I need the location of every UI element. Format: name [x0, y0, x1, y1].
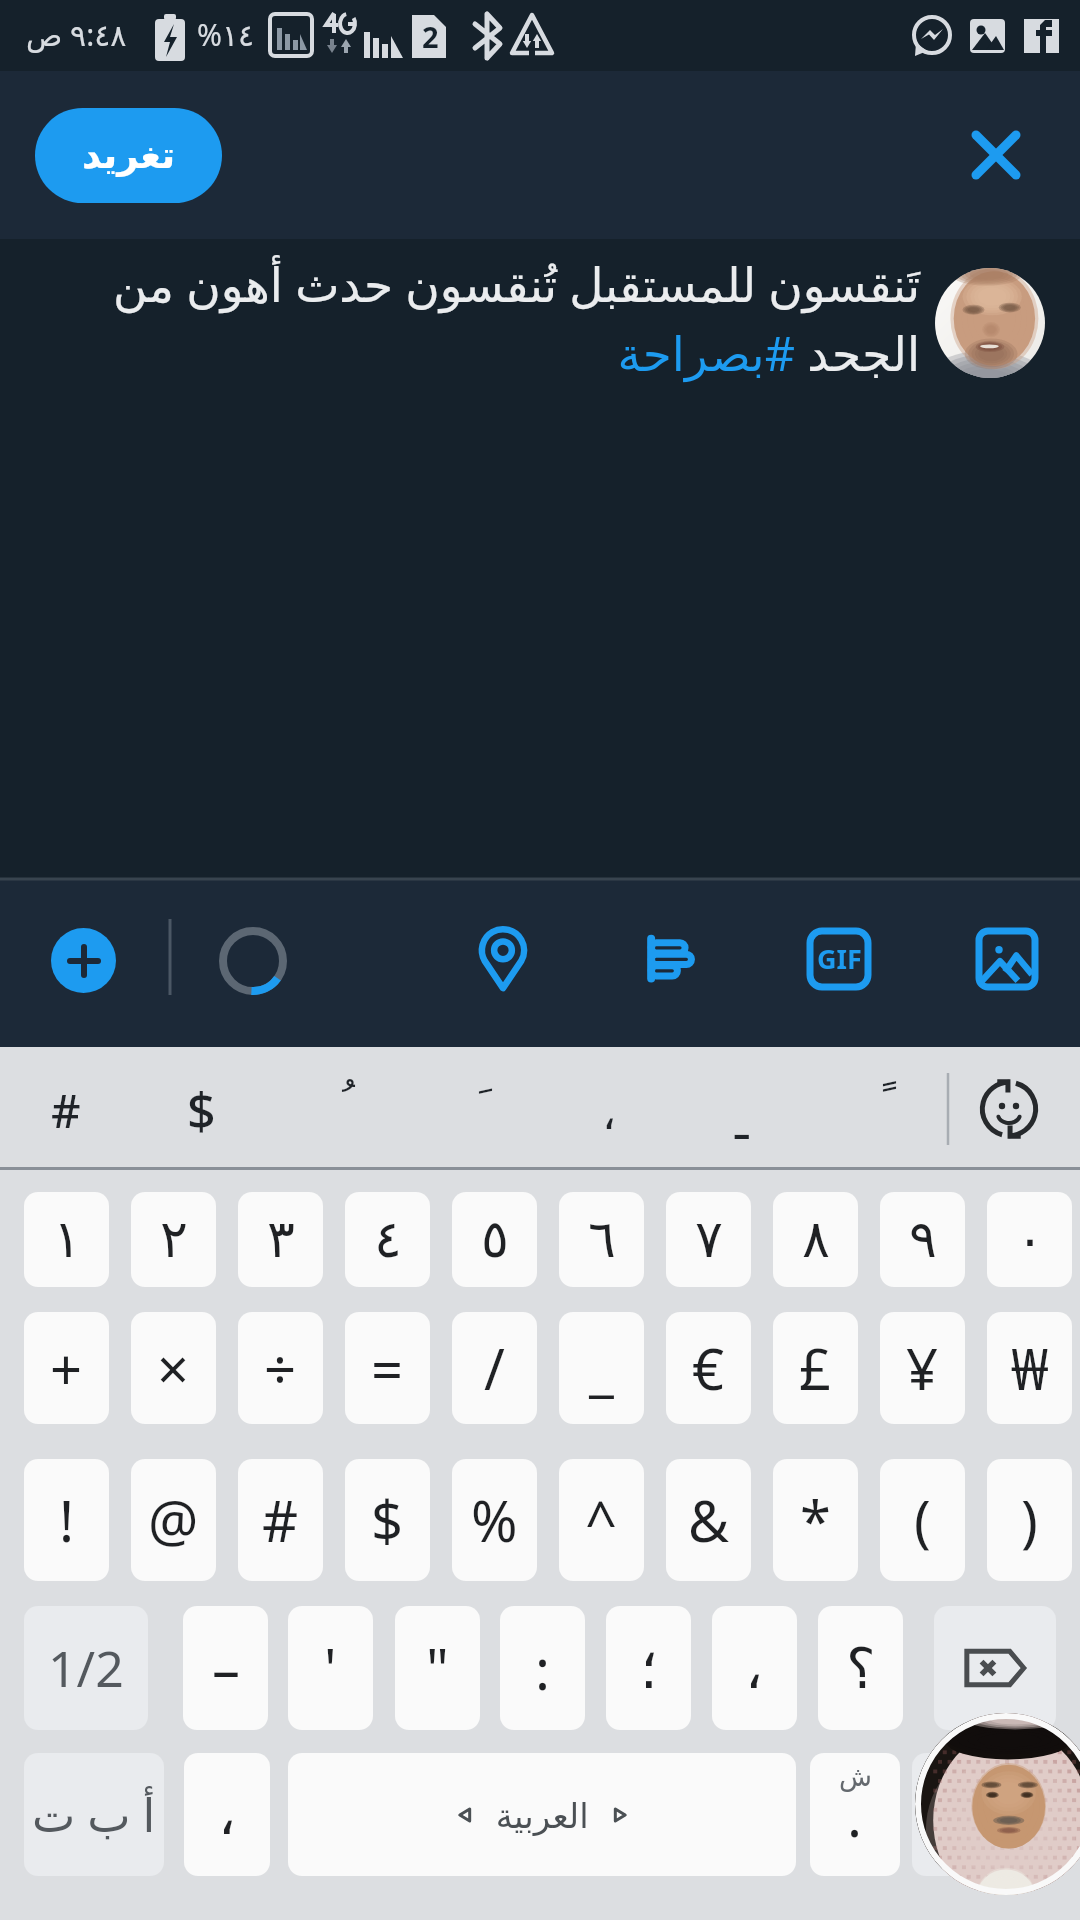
staticText: ٩:٤٨ ص [26, 14, 127, 55]
button[interactable]: # [4, 1070, 128, 1150]
button[interactable]: Profile picture [935, 268, 1045, 378]
button[interactable]: " [395, 1606, 480, 1730]
button[interactable]: ٤ [345, 1192, 430, 1287]
button[interactable]: َ [412, 1065, 536, 1145]
staticText: – [212, 1630, 240, 1706]
staticText: ٦ [588, 1209, 616, 1270]
button[interactable]: $ [345, 1459, 430, 1581]
staticText: # [51, 1079, 81, 1142]
button[interactable]: Media [967, 919, 1047, 999]
button[interactable]: . [810, 1753, 900, 1876]
button[interactable]: ) [987, 1459, 1072, 1581]
button[interactable]: ₩ [987, 1312, 1072, 1424]
staticText: ! [59, 1482, 75, 1558]
staticText: ؟ [846, 1636, 876, 1701]
button[interactable]: + [24, 1312, 109, 1424]
staticText: GIF [817, 940, 862, 977]
button[interactable]: العربية [288, 1753, 796, 1876]
staticText: ٩ [909, 1209, 937, 1270]
button[interactable]: ٩ [880, 1192, 965, 1287]
button[interactable]: € [666, 1312, 751, 1424]
button[interactable]: $ [139, 1070, 263, 1150]
button[interactable]: ، [712, 1606, 797, 1730]
button[interactable]: ، [547, 1073, 671, 1153]
button[interactable] [934, 1606, 1056, 1730]
staticText: $ [371, 1482, 404, 1558]
button[interactable]: ؟ [818, 1606, 903, 1730]
button[interactable]: Chat head [915, 1713, 1080, 1895]
button[interactable]: ^ [559, 1459, 644, 1581]
button[interactable]: / [452, 1312, 537, 1424]
staticText: & [688, 1482, 729, 1558]
button[interactable]: ( [880, 1459, 965, 1581]
staticText: 1/2 [48, 1634, 124, 1702]
button[interactable]: ¥ [880, 1312, 965, 1424]
button[interactable]: Character count [219, 927, 287, 995]
staticText: %١٤ [197, 14, 255, 55]
button[interactable]: Add tweet [51, 928, 116, 993]
staticText: $ [187, 1076, 216, 1144]
button[interactable]: _ [559, 1312, 644, 1424]
staticText: ش [839, 1761, 872, 1792]
button[interactable]: ؛ [606, 1606, 691, 1730]
button[interactable]: ُ [275, 1063, 399, 1143]
staticText: ٠ [1016, 1209, 1044, 1270]
staticText: ١ [53, 1209, 81, 1270]
staticText: @ [148, 1482, 199, 1558]
button[interactable]: ٥ [452, 1192, 537, 1287]
button[interactable]: % [452, 1459, 537, 1581]
button[interactable]: = [345, 1312, 430, 1424]
button[interactable]: ٧ [666, 1192, 751, 1287]
button[interactable]: * [773, 1459, 858, 1581]
staticText: " [426, 1630, 449, 1706]
button[interactable]: ٠ [987, 1192, 1072, 1287]
staticText: ، [218, 1782, 237, 1847]
staticText: ـ [735, 1096, 749, 1150]
staticText: ٣ [267, 1209, 295, 1270]
button[interactable]: Switch keyboard [972, 1072, 1046, 1146]
staticText: العربية [478, 1792, 607, 1838]
staticText: * [800, 1482, 831, 1558]
button[interactable]: تغريد [35, 108, 222, 203]
button[interactable]: Location [463, 918, 543, 998]
staticText: _ [589, 1330, 614, 1406]
button[interactable]: – [183, 1606, 268, 1730]
button[interactable] [912, 1753, 1058, 1876]
button[interactable]: Poll [631, 918, 711, 998]
staticText: ^ [585, 1482, 618, 1558]
button[interactable]: ٦ [559, 1192, 644, 1287]
button[interactable]: # [238, 1459, 323, 1581]
button[interactable]: GIF [799, 919, 879, 999]
button[interactable]: @ [131, 1459, 216, 1581]
staticText: ₩ [1011, 1330, 1049, 1406]
button[interactable]: ـ [680, 1083, 804, 1163]
staticText: ) [1021, 1482, 1038, 1558]
staticText: تَنقسون للمستقبل تُنقسون حدث أهون من الج… [96, 252, 920, 385]
staticText: = [371, 1330, 404, 1406]
staticText: ؛ [640, 1636, 658, 1701]
button[interactable]: & [666, 1459, 751, 1581]
staticText: ٧ [695, 1209, 723, 1270]
staticText: ÷ [264, 1330, 297, 1406]
button[interactable]: ً [816, 1063, 940, 1143]
staticText: . [847, 1777, 863, 1853]
button[interactable]: £ [773, 1312, 858, 1424]
staticText: ٥ [481, 1209, 509, 1270]
button[interactable]: ' [288, 1606, 373, 1730]
staticText: £ [799, 1330, 832, 1406]
button[interactable]: ١ [24, 1192, 109, 1287]
button[interactable]: Close [950, 109, 1042, 201]
button[interactable]: ، [184, 1753, 270, 1876]
button[interactable]: × [131, 1312, 216, 1424]
button[interactable]: 1/2 [24, 1606, 148, 1730]
button[interactable]: ! [24, 1459, 109, 1581]
staticText: # [262, 1482, 299, 1558]
staticText: ٨ [802, 1209, 830, 1270]
button[interactable]: ÷ [238, 1312, 323, 1424]
button[interactable]: : [500, 1606, 585, 1730]
button[interactable]: ٣ [238, 1192, 323, 1287]
button[interactable]: أ ب ت [24, 1753, 164, 1876]
button[interactable]: ٨ [773, 1192, 858, 1287]
staticText: أ ب ت [32, 1783, 156, 1846]
button[interactable]: ٢ [131, 1192, 216, 1287]
